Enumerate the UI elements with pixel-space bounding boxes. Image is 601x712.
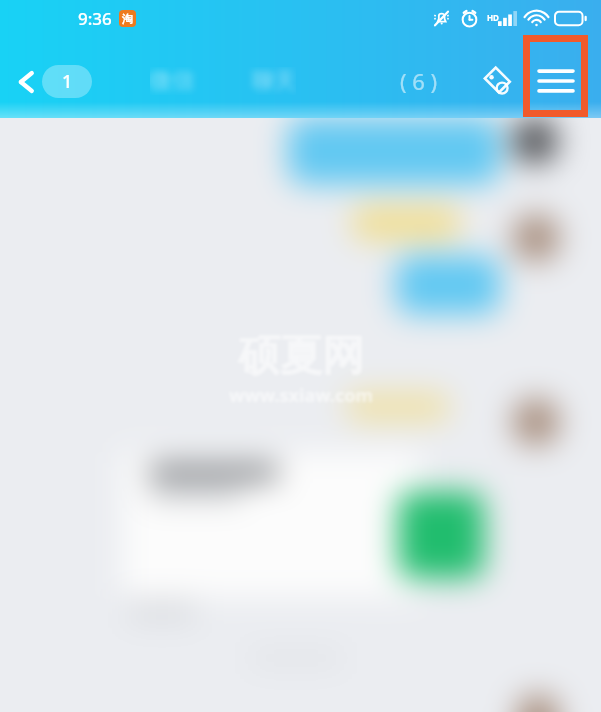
staticText: www.sxiaw.com bbox=[229, 383, 373, 408]
staticText: HD bbox=[487, 12, 499, 23]
button[interactable]: Back bbox=[0, 59, 100, 104]
staticText: 聊天 bbox=[252, 67, 296, 95]
button[interactable]: Tag bbox=[475, 59, 519, 103]
staticText: ( 6 ) bbox=[400, 66, 438, 96]
staticText: 硕夏网 bbox=[238, 330, 364, 383]
staticText: 9:36 bbox=[78, 7, 112, 30]
staticText: 淘 bbox=[122, 12, 133, 26]
staticText: 微信 bbox=[150, 67, 194, 95]
button[interactable]: Menu bbox=[530, 53, 582, 109]
staticText: 1 bbox=[62, 69, 73, 94]
